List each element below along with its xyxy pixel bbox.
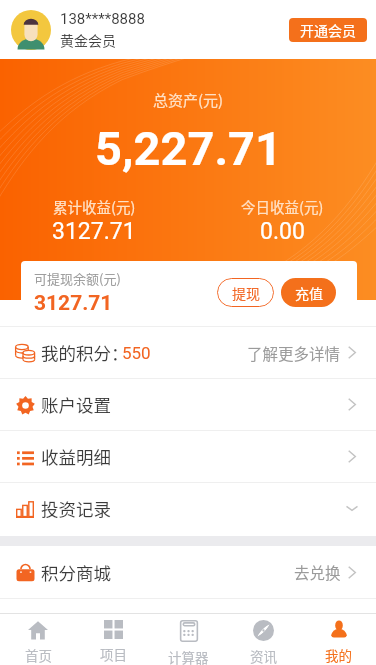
- staticText: 充值: [295, 283, 323, 303]
- button[interactable]: 收益明细: [0, 431, 376, 482]
- staticText: 3127.71: [34, 291, 113, 316]
- staticText: 首页: [25, 645, 52, 665]
- button[interactable]: 我的积分：: [0, 327, 376, 378]
- staticText: 0.00: [260, 218, 305, 245]
- staticText: 黄金会员: [60, 30, 116, 50]
- staticText: 可提现余额(元): [34, 269, 121, 288]
- staticText: 计算器: [168, 647, 209, 665]
- button[interactable]: Projects: [76, 614, 151, 665]
- button[interactable]: Calculator: [151, 614, 226, 665]
- other: Profile: [329, 620, 349, 640]
- other: Calculator: [178, 620, 200, 642]
- button[interactable]: 投资记录: [0, 483, 376, 534]
- staticText: 积分商城: [41, 560, 111, 585]
- button[interactable]: Profile: [301, 614, 376, 665]
- other: Projects: [104, 620, 123, 639]
- button[interactable]: Home: [0, 614, 76, 665]
- staticText: 总资产(元): [153, 89, 224, 111]
- staticText: 资讯: [250, 646, 277, 665]
- button[interactable]: 账户设置: [0, 379, 376, 430]
- other: News: [253, 620, 274, 641]
- staticText: 投资记录: [41, 496, 111, 521]
- staticText: 5,227.71: [95, 121, 282, 176]
- staticText: 550: [122, 343, 151, 363]
- button[interactable]: News: [226, 614, 301, 665]
- staticText: 了解更多详情: [247, 342, 341, 364]
- other: Home: [28, 620, 48, 640]
- staticText: 累计收益(元): [53, 196, 136, 217]
- staticText: 收益明细: [41, 444, 111, 469]
- staticText: 去兑换: [294, 561, 341, 583]
- staticText: 我的: [325, 645, 352, 665]
- staticText: 138****8888: [60, 10, 145, 28]
- button[interactable]: 充值: [281, 278, 336, 307]
- staticText: 我的积分：: [41, 340, 129, 365]
- button[interactable]: 提现: [217, 278, 274, 307]
- staticText: 今日收益(元): [241, 196, 324, 217]
- button[interactable]: 积分商城: [0, 546, 376, 598]
- staticText: 项目: [100, 644, 127, 664]
- staticText: 账户设置: [41, 392, 111, 417]
- staticText: 3127.71: [52, 218, 136, 245]
- button[interactable]: 开通会员: [289, 18, 367, 42]
- staticText: 提现: [232, 283, 260, 303]
- staticText: 开通会员: [300, 20, 356, 40]
